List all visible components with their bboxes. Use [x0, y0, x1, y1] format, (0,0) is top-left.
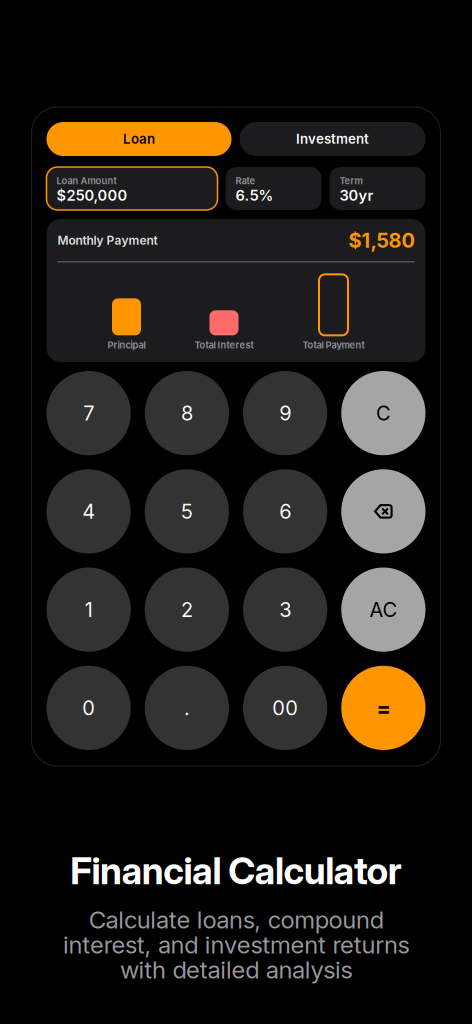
- staticText: $1,580: [348, 228, 414, 252]
- staticText: 6.5%: [235, 186, 273, 204]
- button[interactable]: 7: [46, 371, 131, 455]
- staticText: Rate: [235, 175, 255, 186]
- button[interactable]: 1: [46, 567, 131, 652]
- staticText: Investment: [296, 131, 369, 147]
- staticText: 30yr: [339, 186, 373, 204]
- button[interactable]: 6: [243, 469, 327, 553]
- staticText: Term: [339, 175, 362, 186]
- staticText: Loan Amount: [56, 175, 116, 186]
- staticText: 6: [279, 499, 291, 523]
- button[interactable]: Rate: [225, 167, 321, 210]
- button[interactable]: C: [341, 371, 425, 455]
- staticText: 0: [82, 696, 95, 720]
- staticText: 9: [279, 401, 291, 425]
- button[interactable]: 00: [243, 666, 327, 750]
- button[interactable]: 2: [145, 567, 229, 652]
- staticText: =: [376, 695, 390, 721]
- button[interactable]: Loan Amount: [46, 167, 217, 210]
- button[interactable]: 8: [145, 371, 229, 455]
- button[interactable]: Delete: [341, 469, 425, 553]
- button[interactable]: 4: [46, 469, 131, 553]
- button[interactable]: Term: [329, 167, 425, 210]
- staticText: 7: [83, 401, 94, 425]
- staticText: 4: [82, 499, 95, 523]
- staticText: 1: [85, 597, 93, 622]
- staticText: 8: [181, 401, 193, 425]
- staticText: C: [376, 401, 391, 425]
- staticText: 00: [272, 696, 298, 720]
- staticText: Loan: [123, 131, 155, 147]
- button[interactable]: AC: [341, 567, 425, 652]
- staticText: Total Interest: [194, 339, 253, 351]
- staticText: Financial Calculator: [70, 848, 402, 893]
- staticText: Calculate loans, compound interest, and …: [63, 905, 409, 984]
- staticText: Total Payment: [302, 339, 364, 351]
- staticText: $250,000: [56, 186, 127, 204]
- staticText: 2: [181, 597, 193, 622]
- staticText: Monthly Payment: [57, 233, 157, 248]
- button[interactable]: 0: [46, 666, 131, 750]
- button[interactable]: Investment: [239, 122, 425, 156]
- staticText: AC: [369, 597, 397, 622]
- staticText: 3: [279, 597, 291, 622]
- button[interactable]: Loan: [46, 122, 231, 156]
- button[interactable]: =: [341, 666, 425, 750]
- staticText: .: [184, 696, 190, 720]
- button[interactable]: 3: [243, 567, 327, 652]
- staticText: 5: [181, 499, 193, 523]
- staticText: Principal: [107, 339, 145, 351]
- button[interactable]: 9: [243, 371, 327, 455]
- button[interactable]: .: [145, 666, 229, 750]
- button[interactable]: 5: [145, 469, 229, 553]
